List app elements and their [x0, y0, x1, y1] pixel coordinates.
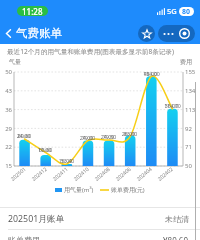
- staticText: 79.00: [79, 134, 98, 141]
- staticText: 50: [185, 162, 192, 170]
- staticText: 113: [185, 106, 196, 114]
- staticText: 202404: [135, 165, 153, 182]
- staticText: 费用: [180, 58, 192, 66]
- staticText: 16.00: [56, 157, 75, 164]
- staticText: 15: [1, 162, 12, 170]
- staticText: 202501月账单: [8, 213, 65, 225]
- staticText: 43: [1, 87, 12, 95]
- staticText: 50: [1, 68, 12, 76]
- staticText: 65.60: [36, 146, 55, 153]
- staticText: 36.00: [162, 102, 181, 109]
- staticText: 202410: [72, 165, 90, 182]
- staticText: 154.00: [142, 70, 161, 77]
- button[interactable]: Favorite: [138, 25, 155, 42]
- staticText: 71: [185, 143, 192, 151]
- button[interactable]: More options: [158, 25, 195, 42]
- staticText: 气费账单: [16, 26, 62, 40]
- staticText: 5G: [167, 6, 177, 16]
- staticText: 83.00: [121, 130, 140, 137]
- button[interactable]: Back: [0, 25, 16, 41]
- staticText: 最近12个月的用气量和账单费用(图表最多显示前8条记录): [7, 47, 174, 56]
- staticText: 79.50: [100, 133, 119, 140]
- button[interactable]: 202501月账单: [0, 208, 200, 229]
- staticText: 134: [185, 87, 196, 95]
- staticText: 114.70: [163, 102, 182, 109]
- staticText: 202412: [30, 165, 48, 182]
- staticText: 24.00: [14, 132, 33, 139]
- staticText: 账单费用(元): [111, 186, 145, 194]
- staticText: ¥80.60: [163, 235, 189, 240]
- staticText: 24.00: [98, 133, 117, 140]
- staticText: 202501: [9, 165, 27, 182]
- staticText: 29: [1, 125, 12, 133]
- staticText: 202411: [51, 165, 69, 182]
- staticText: 24.00: [77, 134, 96, 141]
- staticText: 22: [1, 143, 12, 151]
- staticText: 80.60: [15, 132, 34, 139]
- staticText: 19.00: [35, 146, 54, 153]
- staticText: 155: [185, 68, 196, 76]
- staticText: 80: [182, 7, 191, 16]
- staticText: 53.40: [58, 157, 77, 164]
- staticText: 36: [1, 106, 12, 114]
- staticText: 账单费用: [8, 235, 40, 240]
- staticText: 92: [185, 125, 192, 133]
- staticText: 202406: [114, 165, 132, 182]
- staticText: 48.00: [141, 70, 160, 77]
- staticText: 202408: [93, 165, 111, 182]
- staticText: 11:28: [22, 6, 43, 16]
- staticText: 未结清: [165, 214, 189, 224]
- staticText: 用气量(m³): [64, 186, 94, 194]
- staticText: 202402: [156, 165, 174, 182]
- staticText: 26.00: [119, 130, 138, 137]
- staticText: 气量: [9, 58, 21, 66]
